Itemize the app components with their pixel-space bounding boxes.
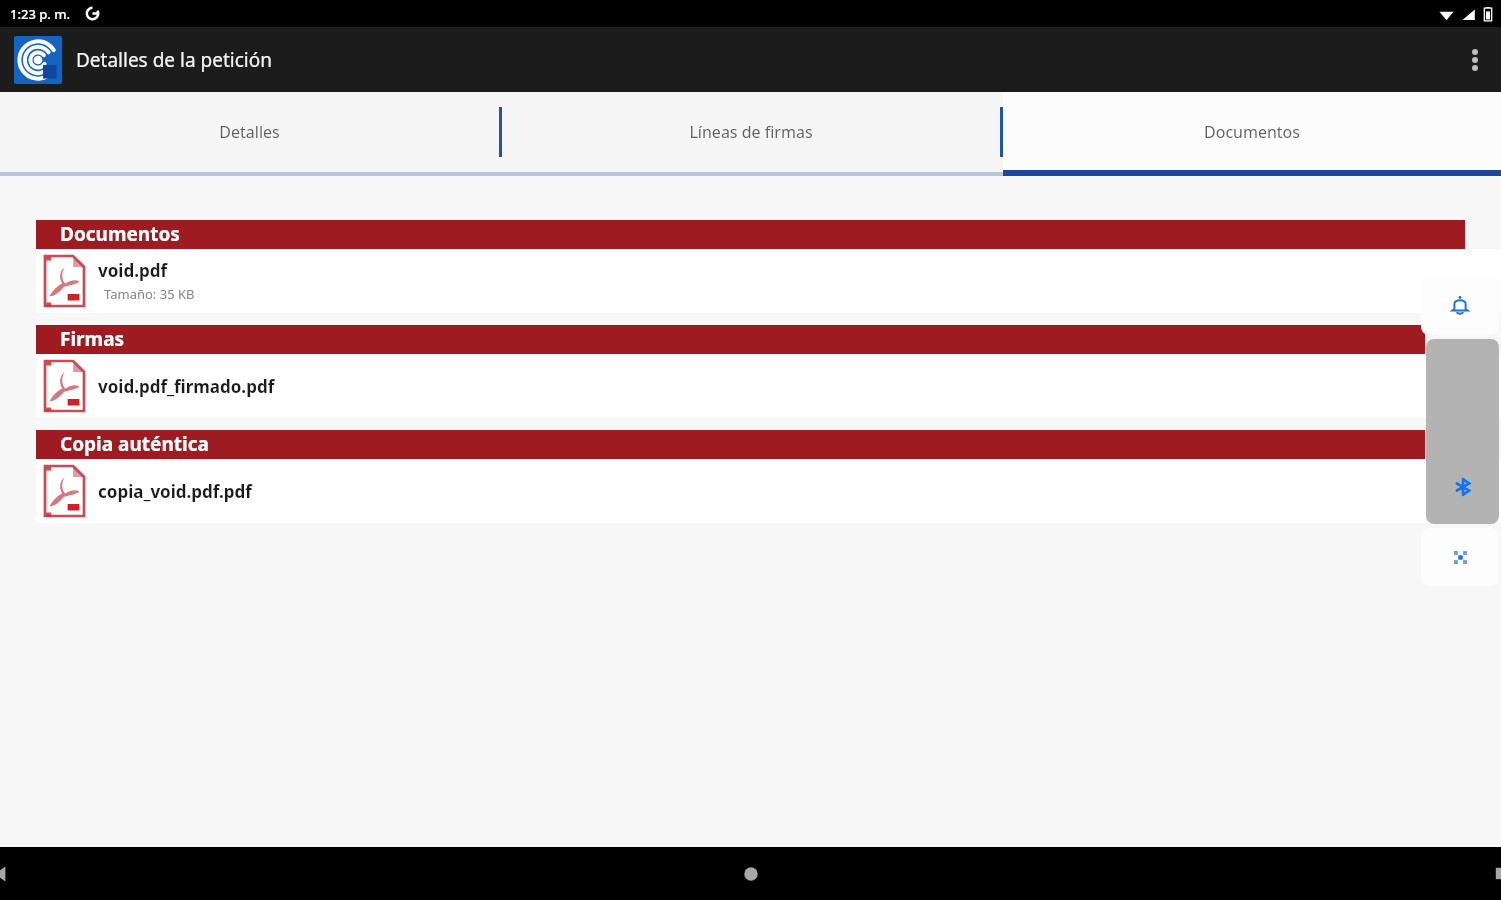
button[interactable]: copia_void.pdf.pdf <box>36 459 1501 523</box>
button[interactable]: Inicio <box>501 847 1001 900</box>
staticText: void.pdf_firmado.pdf <box>98 375 275 398</box>
button[interactable]: Detalles <box>0 92 499 172</box>
staticText: Firmas <box>60 326 125 352</box>
staticText: 1:23 p. m. <box>10 5 71 23</box>
button[interactable]: Atrás <box>0 847 501 900</box>
button[interactable]: Firmas <box>36 325 1425 354</box>
button[interactable]: Bluetooth desconectado <box>1426 339 1499 524</box>
button[interactable]: Documentos <box>1003 92 1501 172</box>
staticText: copia_void.pdf.pdf <box>98 480 252 503</box>
staticText: Detalles de la petición <box>76 47 272 73</box>
button[interactable]: void.pdf <box>36 249 1501 313</box>
staticText: Documentos <box>1204 121 1300 143</box>
staticText: Documentos <box>60 221 180 247</box>
staticText: Tamaño: 35 KB <box>104 285 195 303</box>
button[interactable]: Ajustes <box>1421 528 1499 586</box>
button[interactable]: Recientes <box>1001 847 1501 900</box>
button[interactable]: Más opciones <box>1449 34 1501 86</box>
staticText: Copia auténtica <box>60 431 209 457</box>
staticText: Líneas de firmas <box>689 121 813 143</box>
button[interactable]: Copia auténtica <box>36 430 1425 459</box>
button[interactable]: App icon <box>14 36 62 84</box>
button[interactable]: Documentos <box>36 220 1465 249</box>
staticText: Detalles <box>219 121 280 143</box>
button[interactable]: void.pdf_firmado.pdf <box>36 354 1501 418</box>
button[interactable]: Líneas de firmas <box>502 92 1000 172</box>
staticText: void.pdf <box>98 259 168 282</box>
button[interactable]: Notificaciones <box>1421 275 1499 335</box>
